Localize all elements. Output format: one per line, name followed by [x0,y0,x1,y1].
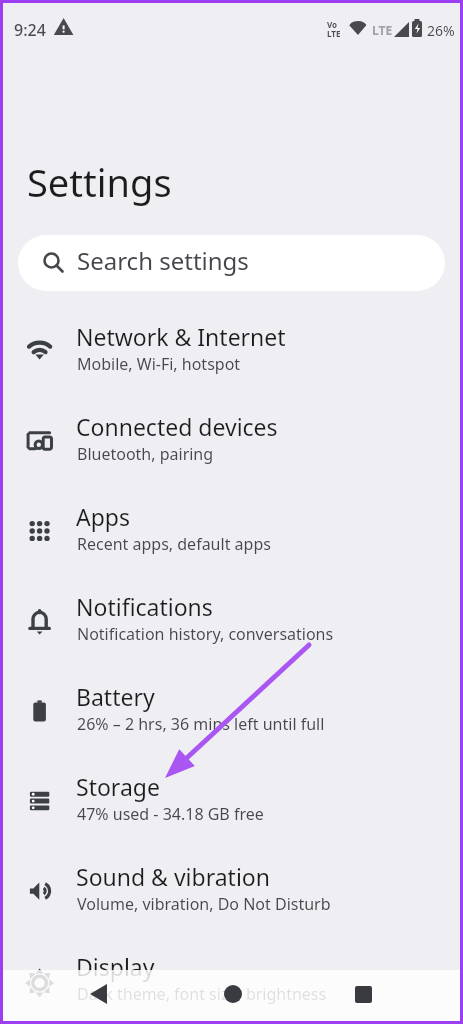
button[interactable]: Connected devices [0,408,463,498]
button[interactable]: Storage [0,768,463,858]
staticText: Notification history, conversations [77,623,334,645]
button[interactable]: Apps [0,498,463,588]
button[interactable]: Notifications [0,588,463,678]
staticText: 9:24 [14,19,46,41]
staticText: Mobile, Wi-Fi, hotspot [77,353,241,375]
staticText: Notifications [76,591,213,622]
staticText: 47% used - 34.18 GB free [77,803,264,825]
staticText: Sound & vibration [76,861,270,892]
staticText: Apps [76,501,131,532]
button[interactable]: Battery [0,678,463,768]
button[interactable] [76,972,120,1016]
button[interactable]: Search settings [18,235,445,291]
staticText: 26% – 2 hrs, 36 mins left until full [77,713,325,735]
button[interactable]: Network & Internet [0,318,463,408]
staticText: Bluetooth, pairing [77,443,214,465]
staticText: Settings [27,156,172,208]
staticText: Connected devices [76,411,278,442]
staticText: Dark theme, font size, brightness [77,983,327,1005]
staticText: Display [76,951,155,982]
staticText: LTE [372,22,393,38]
staticText: LTE [327,28,341,39]
staticText: Network & Internet [76,321,286,352]
staticText: Storage [76,771,160,802]
button[interactable] [209,972,253,1016]
staticText: Search settings [77,244,249,277]
button[interactable]: Sound & vibration [0,858,463,948]
staticText: 26% [427,21,455,40]
staticText: Volume, vibration, Do Not Disturb [77,893,331,915]
button[interactable]: Display [0,948,463,1024]
staticText: Vo [327,19,338,30]
staticText: Battery [76,681,155,712]
button[interactable] [341,972,385,1016]
staticText: Recent apps, default apps [77,533,271,555]
